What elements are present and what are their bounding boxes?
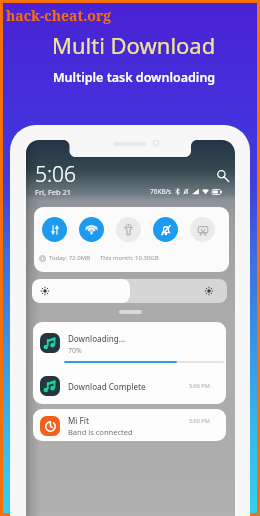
- staticText: This month: 10.30GB: [100, 254, 159, 262]
- staticText: hack-cheat.org: [6, 6, 112, 25]
- button[interactable]: Flashlight: [116, 217, 141, 242]
- staticText: Fri, Feb 21: [35, 187, 72, 197]
- staticText: Band is connected: [68, 427, 133, 437]
- staticText: Download Complete: [68, 381, 146, 392]
- staticText: Today: 72.0MB: [49, 254, 91, 262]
- staticText: 76KB/s: [150, 187, 172, 196]
- staticText: Multiple task downloading: [53, 69, 216, 86]
- button[interactable]: Cast: [190, 217, 215, 242]
- button[interactable]: Downloading...: [33, 322, 226, 368]
- staticText: 5:06 PM: [189, 382, 210, 389]
- staticText: 70%: [68, 346, 82, 356]
- button[interactable]: Brightness: [32, 279, 227, 303]
- staticText: Multi Download: [52, 30, 216, 60]
- button[interactable]: Search: [215, 168, 229, 182]
- staticText: Downloading...: [68, 333, 126, 344]
- button[interactable]: Mi Fit: [33, 409, 226, 441]
- button[interactable]: Mobile data: [42, 217, 67, 242]
- button[interactable]: Wi-Fi: [79, 217, 104, 242]
- button[interactable]: Download Complete: [33, 368, 226, 404]
- staticText: 5:06: [35, 160, 77, 189]
- staticText: Mi Fit: [68, 415, 90, 426]
- staticText: 5:00 PM: [189, 417, 210, 424]
- button[interactable]: Silent: [153, 217, 178, 242]
